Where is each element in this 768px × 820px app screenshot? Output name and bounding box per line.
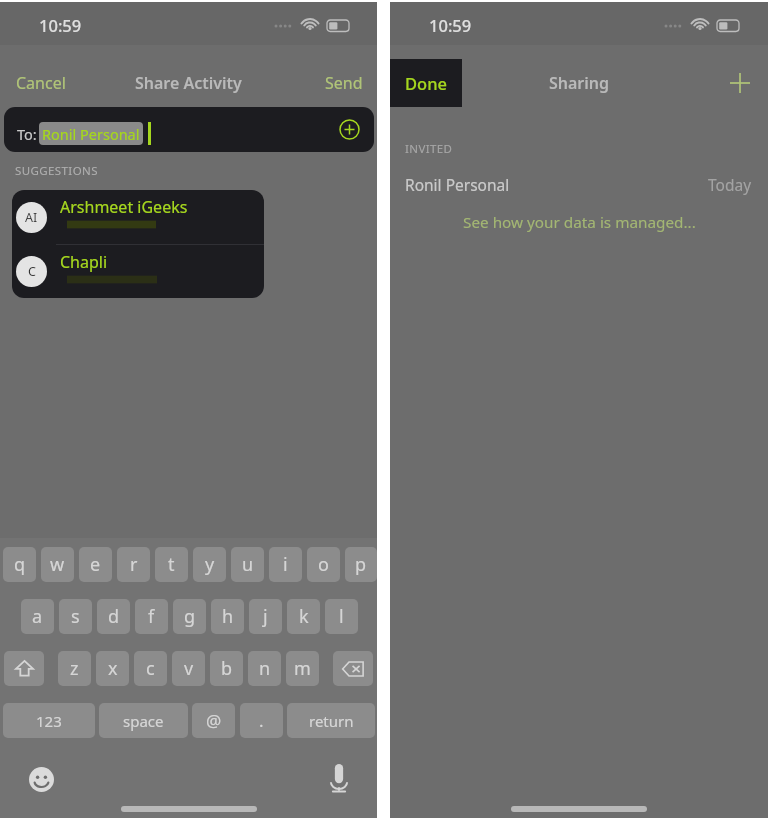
staticText: 10:59 xyxy=(429,14,472,36)
button[interactable]: Add contact xyxy=(331,111,368,148)
staticText: space xyxy=(123,711,164,731)
button[interactable]: z xyxy=(58,651,91,686)
staticText: o xyxy=(318,552,329,577)
staticText: b xyxy=(221,656,233,681)
staticText: q xyxy=(14,552,26,577)
staticText: v xyxy=(184,656,194,681)
staticText: a xyxy=(32,604,43,629)
button[interactable]: Cancel xyxy=(8,62,74,104)
staticText: z xyxy=(70,656,79,681)
staticText: Today xyxy=(708,174,752,195)
button[interactable]: Backspace xyxy=(333,651,373,686)
button[interactable]: Add person xyxy=(722,65,758,101)
button[interactable]: j xyxy=(249,599,282,634)
staticText: Chapli xyxy=(60,251,108,273)
button[interactable]: p xyxy=(345,547,377,582)
staticText: p xyxy=(355,552,367,577)
staticText: u xyxy=(242,552,254,577)
button[interactable]: l xyxy=(325,599,358,634)
button[interactable]: C xyxy=(12,245,264,298)
staticText: e xyxy=(90,552,101,577)
staticText: j xyxy=(263,604,268,629)
staticText: Share Activity xyxy=(135,72,242,94)
staticText: f xyxy=(148,604,155,629)
button[interactable]: Ronil Personal xyxy=(390,166,768,202)
staticText: g xyxy=(184,604,196,629)
staticText: h xyxy=(222,604,234,629)
button[interactable]: Send xyxy=(317,62,371,104)
button[interactable]: u xyxy=(231,547,264,582)
staticText: @ xyxy=(206,709,222,732)
staticText: Ronil Personal xyxy=(405,174,510,195)
staticText: w xyxy=(50,552,65,577)
button[interactable]: e xyxy=(79,547,112,582)
staticText: i xyxy=(283,552,288,577)
staticText: l xyxy=(339,604,344,629)
button[interactable]: v xyxy=(172,651,205,686)
button[interactable]: 123 xyxy=(3,703,95,738)
staticText: 123 xyxy=(36,711,62,731)
staticText: Ronil Personal xyxy=(42,124,140,144)
button[interactable]: See how your data is managed... xyxy=(453,207,706,238)
button[interactable]: m xyxy=(286,651,319,686)
staticText: AI xyxy=(25,209,38,226)
staticText: k xyxy=(299,604,309,629)
staticText: Done xyxy=(405,72,447,94)
staticText: c xyxy=(146,656,155,681)
button[interactable]: t xyxy=(155,547,188,582)
button[interactable]: Done xyxy=(390,59,462,107)
staticText: 10:59 xyxy=(39,14,82,36)
button[interactable]: Shift xyxy=(4,651,44,686)
staticText: To: xyxy=(17,124,37,144)
button[interactable]: Dictation xyxy=(320,754,358,803)
staticText: n xyxy=(259,656,271,681)
button[interactable]: AI xyxy=(12,190,264,244)
button[interactable]: n xyxy=(248,651,281,686)
staticText: . xyxy=(259,709,264,732)
button[interactable]: d xyxy=(97,599,130,634)
button[interactable]: a xyxy=(21,599,54,634)
button[interactable]: f xyxy=(135,599,168,634)
staticText: s xyxy=(71,604,80,629)
button[interactable]: s xyxy=(59,599,92,634)
staticText: return xyxy=(309,711,354,731)
staticText: Send xyxy=(325,72,363,94)
staticText: y xyxy=(205,552,215,577)
staticText: m xyxy=(294,656,311,681)
button[interactable]: space xyxy=(99,703,188,738)
staticText: d xyxy=(108,604,120,629)
staticText: Arshmeet iGeeks xyxy=(60,196,188,218)
button[interactable]: q xyxy=(3,547,36,582)
staticText: r xyxy=(130,552,138,577)
button[interactable]: To: xyxy=(4,107,374,152)
button[interactable]: return xyxy=(287,703,375,738)
staticText: Cancel xyxy=(16,72,66,94)
staticText: x xyxy=(108,656,118,681)
button[interactable]: o xyxy=(307,547,340,582)
staticText: Sharing xyxy=(549,72,610,94)
button[interactable]: @ xyxy=(192,703,235,738)
button[interactable]: w xyxy=(41,547,74,582)
staticText: SUGGESTIONS xyxy=(15,163,98,179)
button[interactable]: b xyxy=(210,651,243,686)
staticText: INVITED xyxy=(405,141,453,157)
button[interactable]: x xyxy=(96,651,129,686)
button[interactable]: Emoji keyboard xyxy=(19,757,64,802)
button[interactable]: i xyxy=(269,547,302,582)
staticText: C xyxy=(28,263,36,280)
button[interactable]: . xyxy=(240,703,283,738)
button[interactable]: h xyxy=(211,599,244,634)
button[interactable]: y xyxy=(193,547,226,582)
button[interactable]: r xyxy=(117,547,150,582)
staticText: t xyxy=(168,552,175,577)
button[interactable]: k xyxy=(287,599,320,634)
button[interactable]: c xyxy=(134,651,167,686)
button[interactable]: g xyxy=(173,599,206,634)
staticText: See how your data is managed... xyxy=(463,212,696,233)
